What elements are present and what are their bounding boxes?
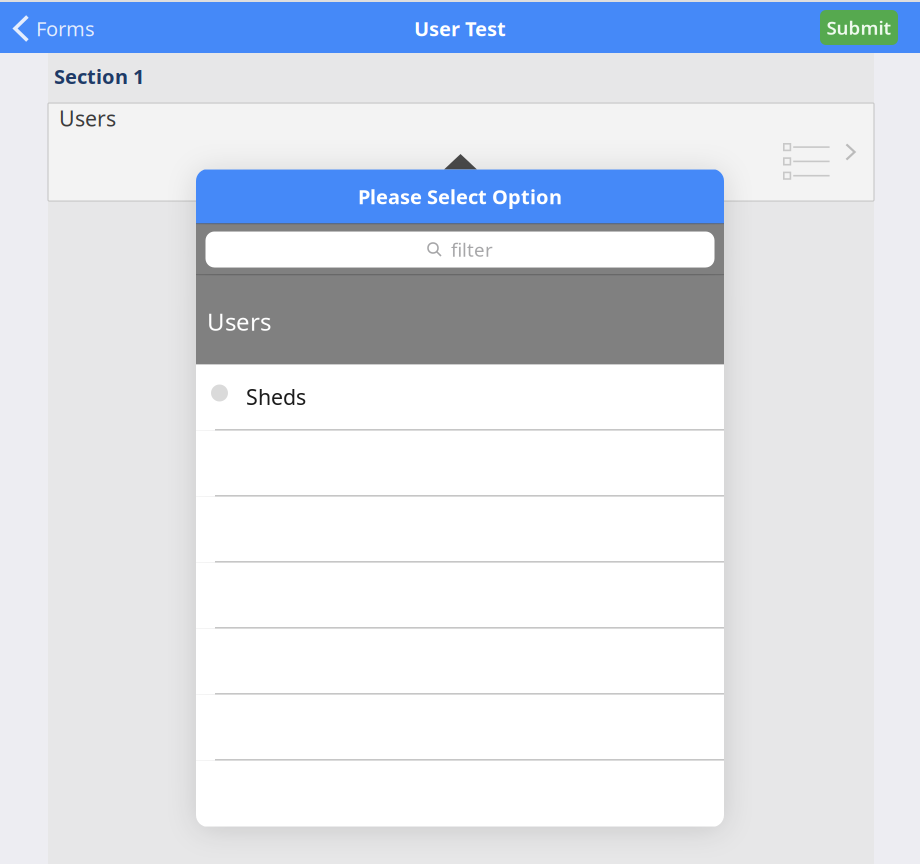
staticText: Submit	[826, 15, 891, 40]
button[interactable]	[196, 496, 724, 562]
button[interactable]: Sheds	[196, 364, 724, 430]
staticText: User Test	[414, 15, 506, 42]
staticText: Section 1	[54, 63, 144, 90]
button[interactable]	[196, 694, 724, 760]
button[interactable]	[196, 430, 724, 496]
button[interactable]: Users	[48, 103, 874, 201]
button[interactable]	[196, 562, 724, 628]
staticText: Users	[207, 305, 271, 337]
staticText: Please Select Option	[358, 183, 562, 210]
button[interactable]: Forms	[0, 3, 109, 54]
staticText: Forms	[36, 15, 95, 42]
staticText: Users	[59, 104, 116, 132]
button[interactable]: Submit	[820, 10, 898, 45]
button[interactable]	[196, 628, 724, 694]
staticText: Sheds	[246, 382, 306, 411]
staticText: filter	[451, 237, 493, 262]
